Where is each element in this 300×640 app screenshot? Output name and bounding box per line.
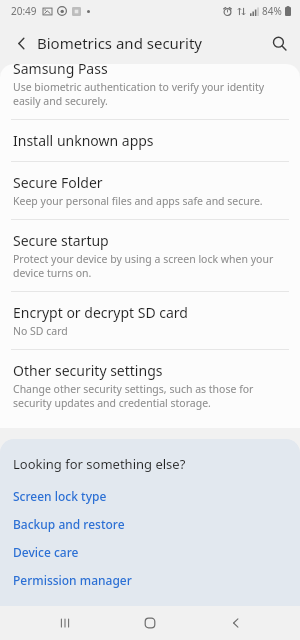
staticText: 84% [262, 4, 282, 18]
staticText: Other security settings [13, 361, 163, 380]
staticText: Looking for something else? [13, 455, 186, 473]
staticText: Device care [13, 544, 79, 560]
button[interactable]: Other security settings [0, 350, 300, 421]
button[interactable]: Search [264, 28, 294, 58]
staticText: 20:49 [11, 4, 37, 18]
staticText: Use biometric authentication to verify y… [13, 80, 284, 108]
button[interactable]: Permission manager [13, 566, 284, 594]
staticText: Keep your personal files and apps safe a… [13, 194, 263, 208]
staticText: Permission manager [13, 572, 132, 588]
button[interactable]: Install unknown apps [0, 120, 300, 161]
button[interactable]: Recent apps [44, 606, 86, 640]
staticText: Backup and restore [13, 516, 125, 532]
staticText: No SD card [13, 324, 68, 338]
staticText: Secure startup [13, 231, 109, 250]
staticText: Encrypt or decrypt SD card [13, 303, 188, 322]
button[interactable]: Samsung Pass [0, 64, 300, 119]
button[interactable]: Screen lock type [13, 482, 284, 510]
button[interactable]: Device care [13, 538, 284, 566]
staticText: Screen lock type [13, 488, 107, 504]
button[interactable]: Navigate up [7, 29, 35, 57]
button[interactable]: Backup and restore [13, 510, 284, 538]
button[interactable]: Encrypt or decrypt SD card [0, 292, 300, 349]
staticText: Change other security settings, such as … [13, 382, 284, 410]
staticText: Install unknown apps [13, 131, 154, 150]
staticText: Samsung Pass [13, 64, 108, 78]
staticText: Biometrics and security [37, 33, 203, 53]
button[interactable]: Secure Folder [0, 162, 300, 219]
staticText: Protect your device by using a screen lo… [13, 252, 284, 280]
button[interactable]: Home [129, 606, 171, 640]
staticText: Secure Folder [13, 173, 103, 192]
button[interactable]: Secure startup [0, 220, 300, 291]
button[interactable]: Back [215, 606, 257, 640]
